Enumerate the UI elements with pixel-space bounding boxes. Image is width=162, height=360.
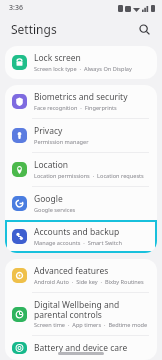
staticText: Digital Wellbeing and parental controls (34, 299, 150, 320)
staticText: Manage accounts · Smart Switch (34, 239, 122, 247)
staticText: Permission manager (34, 138, 89, 146)
staticText: Settings (11, 21, 57, 37)
staticText: 3:36 (9, 3, 23, 13)
staticText: Google (34, 193, 63, 205)
button[interactable]: Search (134, 19, 154, 39)
button[interactable]: Location (5, 153, 157, 186)
staticText: Android Auto · Side key · Bixby Routines (34, 278, 144, 286)
staticText: Battery and device care (34, 342, 128, 354)
button[interactable]: Lock screen (5, 46, 157, 79)
staticText: Lock screen (34, 52, 81, 64)
staticText: Location (34, 159, 69, 171)
button[interactable]: Biometrics and security (5, 85, 157, 118)
staticText: Accounts and backup (34, 226, 120, 238)
staticText: Screen time · App timers · Bedtime mode (34, 321, 148, 329)
staticText: Location permissions · Location requests (34, 172, 144, 180)
button[interactable]: Advanced features (5, 259, 157, 292)
button[interactable]: Accounts and backup (5, 220, 157, 253)
staticText: Biometrics and security (34, 91, 128, 103)
staticText: Privacy (34, 125, 63, 137)
button[interactable]: Battery and device care (5, 336, 157, 360)
staticText: Face recognition · Fingerprints (34, 104, 117, 112)
staticText: Screen lock type · Always On Display (34, 65, 132, 73)
staticText: Advanced features (34, 265, 109, 277)
staticText: Google services (34, 206, 76, 214)
button[interactable]: Google (5, 187, 157, 220)
button[interactable]: Privacy (5, 119, 157, 152)
button[interactable]: Digital Wellbeing and parental controls (5, 293, 157, 335)
